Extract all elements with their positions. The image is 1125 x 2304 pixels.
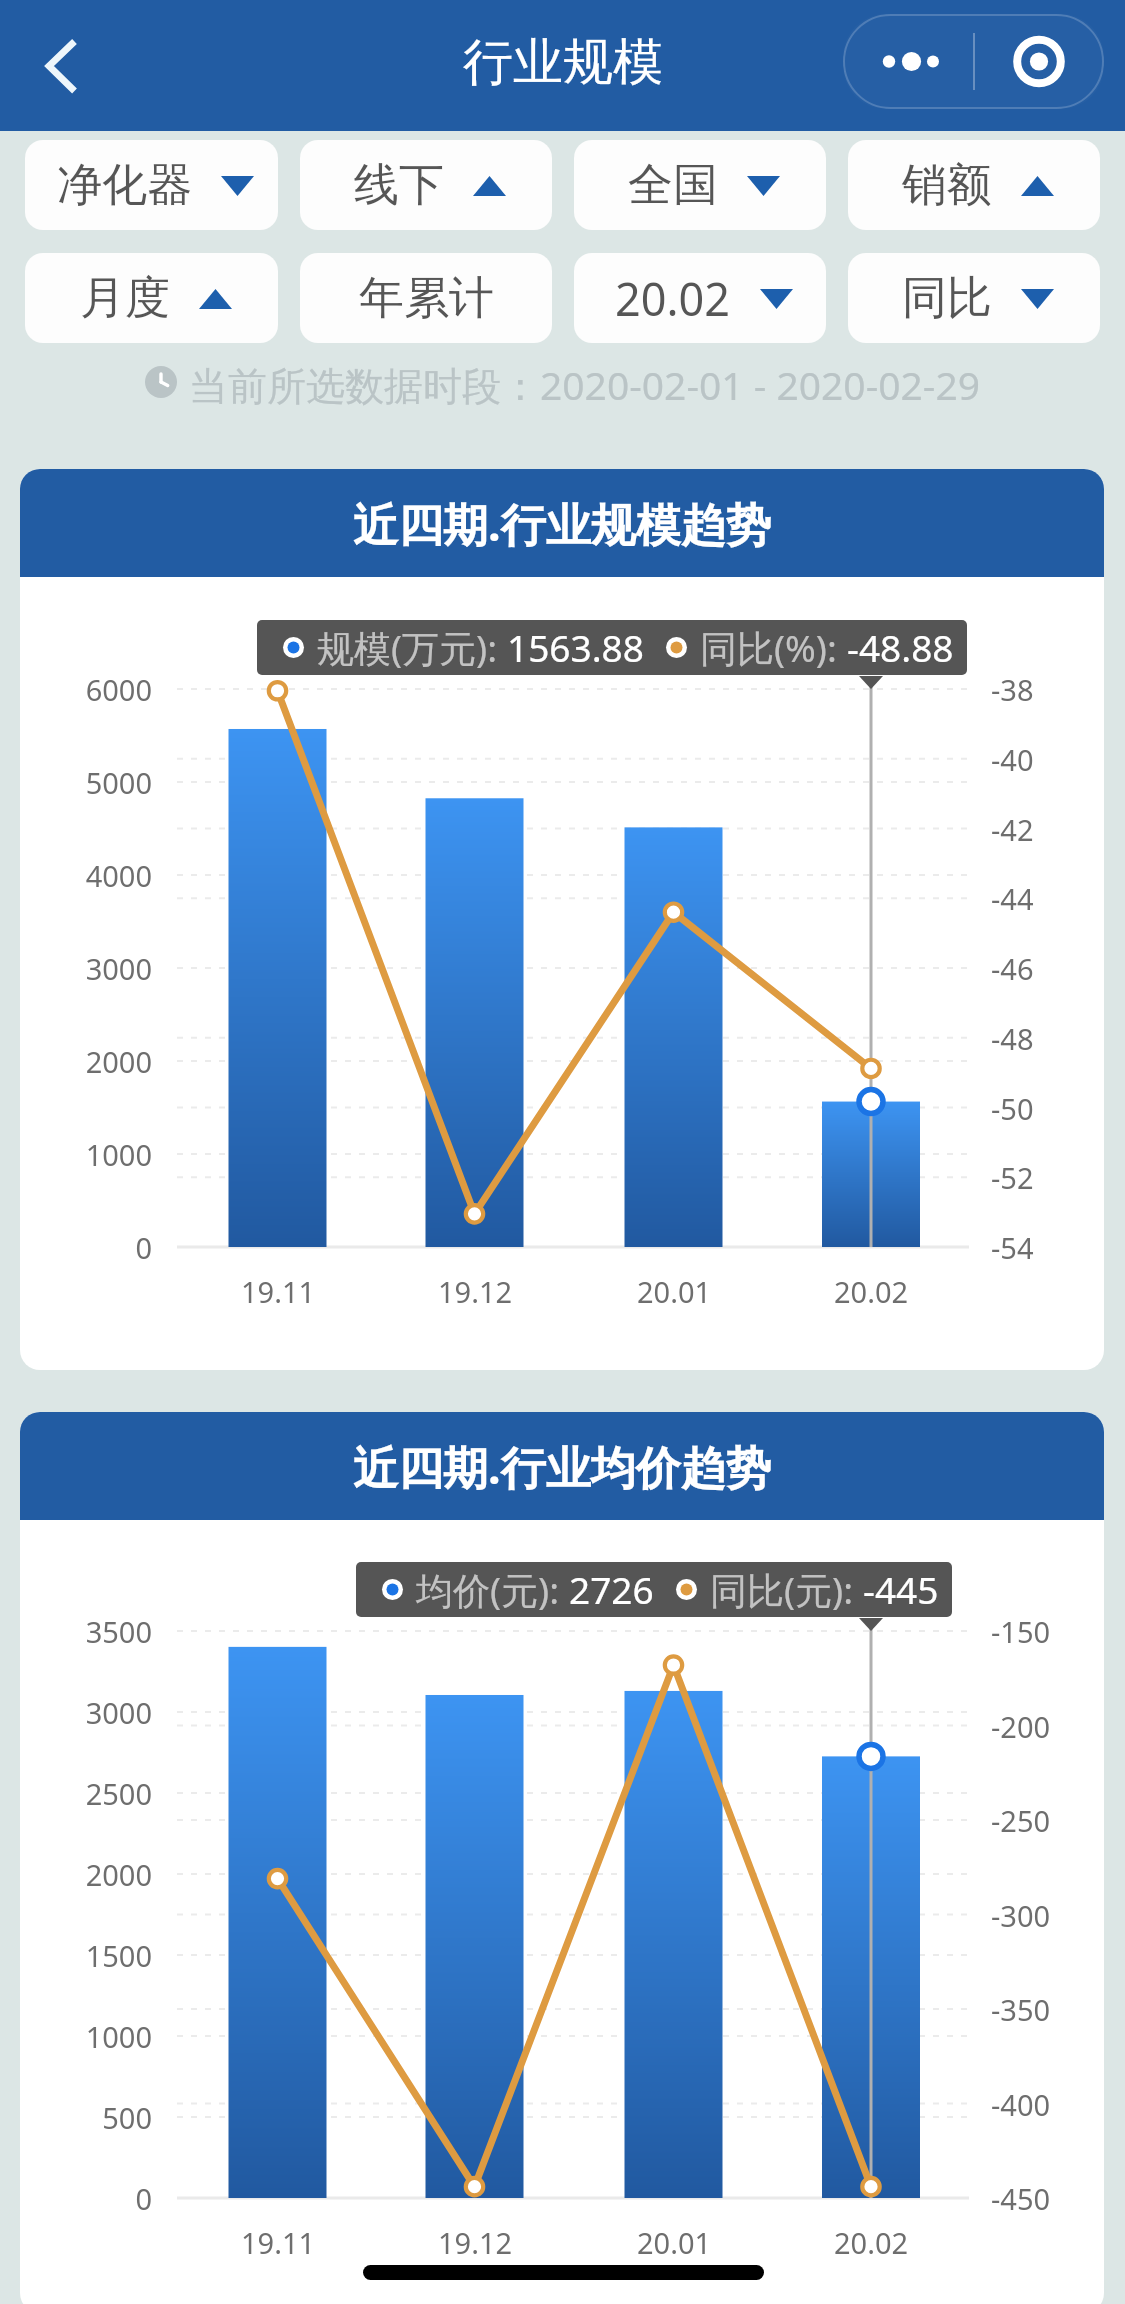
staticText: -250 xyxy=(991,1801,1051,1840)
staticText: 销额 xyxy=(902,157,992,214)
staticText: 2500 xyxy=(85,1774,152,1813)
staticText: 20.02 xyxy=(834,2223,909,2262)
staticText: -52 xyxy=(991,1158,1034,1197)
staticText: 年累计 xyxy=(359,270,494,327)
staticText: 0 xyxy=(135,2179,152,2218)
button[interactable]: 线下 xyxy=(300,140,552,230)
staticText: -42 xyxy=(991,810,1034,849)
staticText: -400 xyxy=(991,2085,1051,2124)
staticText: 20.01 xyxy=(637,1272,712,1311)
staticText: -445 xyxy=(863,1564,939,1614)
staticText: 2000 xyxy=(85,1042,152,1081)
staticText: -300 xyxy=(991,1896,1051,1935)
staticText: 20.01 xyxy=(637,2223,712,2262)
staticText: -200 xyxy=(991,1707,1051,1746)
staticText: -54 xyxy=(991,1228,1034,1267)
staticText: 行业规模 xyxy=(463,31,663,94)
staticText: 规模(万元): xyxy=(317,622,507,673)
staticText: 2000 xyxy=(85,1855,152,1894)
staticText: -38 xyxy=(991,670,1034,709)
staticText: 19.12 xyxy=(438,2223,513,2262)
staticText: 月度 xyxy=(80,270,170,327)
staticText: 净化器 xyxy=(57,157,192,214)
staticText: 1000 xyxy=(85,2017,152,2056)
staticText: -48.88 xyxy=(847,622,954,672)
staticText: 线下 xyxy=(354,157,444,214)
staticText: 20.02 xyxy=(834,1272,909,1311)
staticText: -150 xyxy=(991,1612,1051,1651)
staticText: 均价(元): xyxy=(416,1564,569,1615)
staticText: 19.12 xyxy=(438,1272,513,1311)
staticText: 1563.88 xyxy=(507,622,644,672)
staticText: 2726 xyxy=(569,1564,654,1614)
staticText: 3500 xyxy=(85,1612,152,1651)
staticText: 4000 xyxy=(85,856,152,895)
staticText: -40 xyxy=(991,740,1034,779)
staticText: -46 xyxy=(991,949,1034,988)
staticText: 同比 xyxy=(902,270,992,327)
staticText: 近四期.行业均价趋势 xyxy=(353,1436,771,1497)
staticText: 6000 xyxy=(85,670,152,709)
staticText: 3000 xyxy=(85,1693,152,1732)
staticText: 19.11 xyxy=(241,1272,316,1311)
staticText: -44 xyxy=(991,879,1034,918)
staticText: 0 xyxy=(135,1228,152,1267)
staticText: 全国 xyxy=(628,157,718,214)
staticText: 20.02 xyxy=(615,268,731,329)
button[interactable]: Back xyxy=(14,21,104,111)
button[interactable]: 净化器 xyxy=(25,140,278,230)
staticText: 5000 xyxy=(85,763,152,802)
button[interactable]: 近四期.行业均价趋势 xyxy=(20,1412,1104,2304)
button[interactable]: 月度 xyxy=(25,253,278,343)
staticText: 同比(元): xyxy=(710,1564,863,1615)
staticText: -450 xyxy=(991,2179,1051,2218)
button[interactable]: 同比 xyxy=(848,253,1100,343)
button[interactable]: 近四期.行业规模趋势 xyxy=(20,469,1104,1370)
button[interactable]: 年累计 xyxy=(300,253,552,343)
staticText: -48 xyxy=(991,1019,1034,1058)
staticText: 19.11 xyxy=(241,2223,316,2262)
button[interactable]: 20.02 xyxy=(574,253,826,343)
staticText: 3000 xyxy=(85,949,152,988)
staticText: -50 xyxy=(991,1089,1034,1128)
staticText: 1000 xyxy=(85,1135,152,1174)
staticText: 当前所选数据时段：2020-02-01 - 2020-02-29 xyxy=(189,358,980,406)
button[interactable]: 销额 xyxy=(848,140,1100,230)
button[interactable]: 全国 xyxy=(574,140,826,230)
staticText: 同比(%): xyxy=(700,622,847,673)
staticText: 近四期.行业规模趋势 xyxy=(353,493,771,554)
button[interactable]: More and close xyxy=(843,14,1104,109)
staticText: 1500 xyxy=(85,1936,152,1975)
staticText: 500 xyxy=(102,2098,152,2137)
staticText: -350 xyxy=(991,1990,1051,2029)
